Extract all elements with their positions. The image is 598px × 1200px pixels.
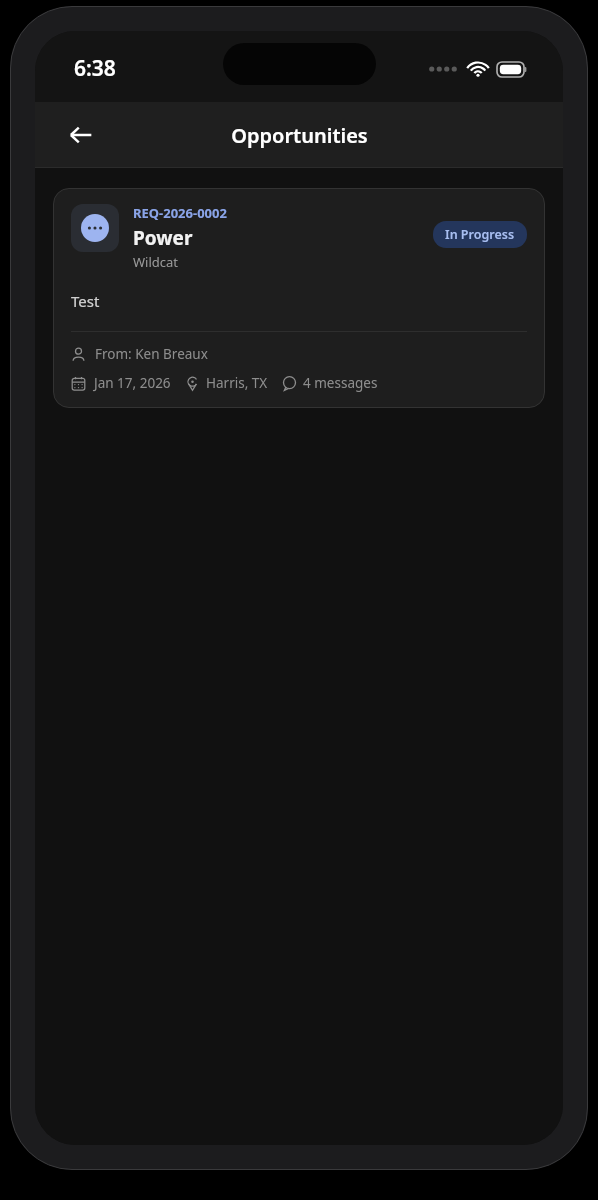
staticText: Power (133, 225, 193, 251)
staticText: Opportunities (231, 122, 368, 149)
staticText: Harris, TX (206, 374, 268, 392)
staticText: 4 messages (303, 374, 378, 392)
button[interactable]: Back (57, 111, 105, 159)
staticText: REQ-2026-0002 (133, 204, 227, 222)
button[interactable]: REQ-2026-0002 (53, 188, 545, 408)
staticText: 6:38 (74, 54, 116, 83)
staticText: Test (71, 291, 100, 311)
staticText: From: Ken Breaux (95, 345, 208, 363)
staticText: Jan 17, 2026 (94, 374, 171, 392)
staticText: Wildcat (133, 253, 179, 271)
button[interactable]: In Progress (433, 221, 527, 248)
staticText: In Progress (445, 226, 515, 243)
